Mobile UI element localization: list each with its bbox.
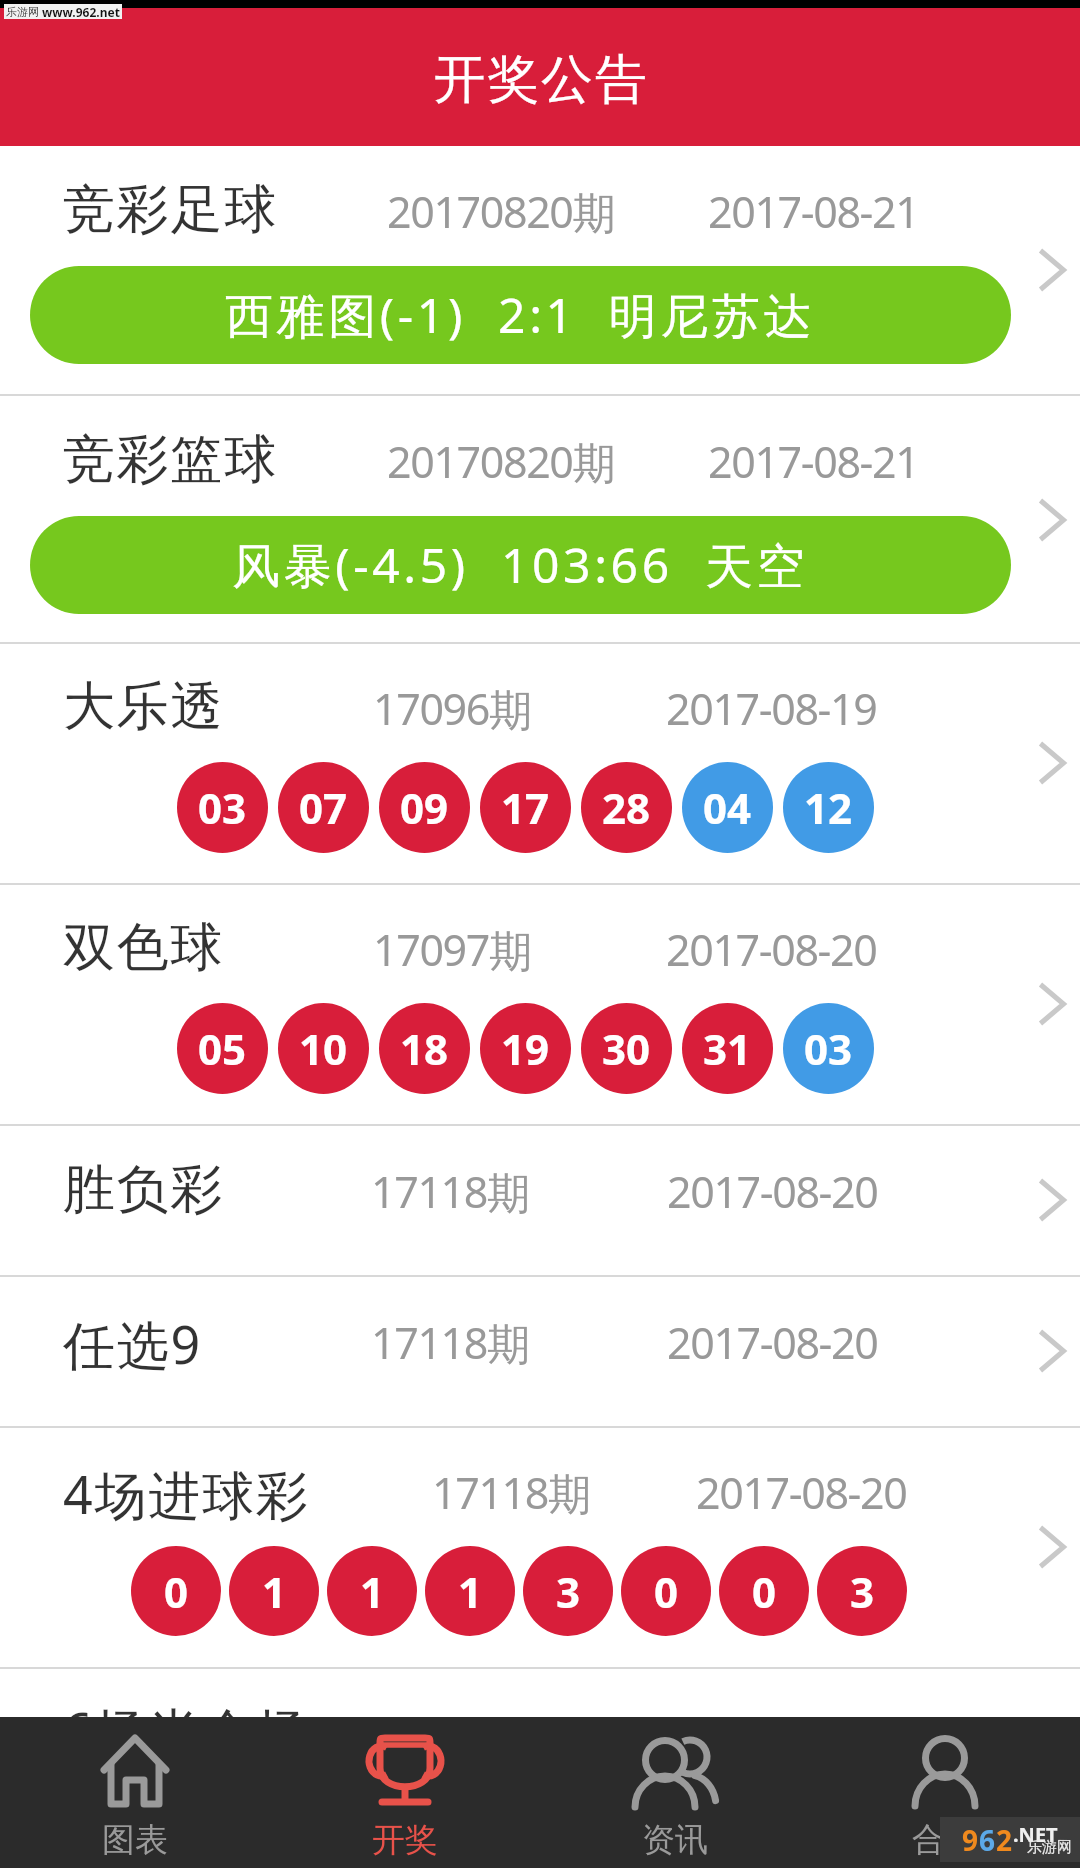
staticText: 资讯 <box>642 1819 708 1861</box>
staticText: 6场半全场 <box>63 1695 310 1766</box>
staticText: 乐游网 <box>1027 1838 1072 1857</box>
staticText: 2017-08-20 <box>696 1463 907 1522</box>
staticText: www.962.net <box>42 4 120 19</box>
staticText: 任选9 <box>63 1308 203 1379</box>
staticText: 风暴(-4.5) 103:66 天空 <box>232 532 809 598</box>
staticText: 31 <box>703 1020 752 1077</box>
button[interactable]: 图表 <box>0 1717 270 1868</box>
staticText: 2017-08-19 <box>666 679 877 738</box>
staticText: 09 <box>400 779 449 836</box>
staticText: 开奖公告 <box>433 47 649 113</box>
staticText: 17118期 <box>432 1463 590 1522</box>
staticText: 12 <box>804 779 853 836</box>
staticText: 20170820期 <box>387 182 615 241</box>
staticText: 19 <box>501 1020 550 1077</box>
staticText: 0 <box>654 1563 679 1620</box>
staticText: 2 <box>996 1821 1013 1859</box>
staticText: 2017-08-20 <box>667 1162 878 1221</box>
staticText: 4场进球彩 <box>63 1458 310 1529</box>
staticText: 9 <box>962 1821 979 1859</box>
staticText: 30 <box>602 1020 651 1077</box>
staticText: 17118期 <box>371 1313 529 1372</box>
staticText: 28 <box>602 779 651 836</box>
staticText: 2017-08-20 <box>667 1313 878 1372</box>
staticText: 17118期 <box>432 1722 590 1781</box>
staticText: 1 <box>360 1563 385 1620</box>
staticText: 17096期 <box>373 679 531 738</box>
staticText: 3 <box>556 1563 581 1620</box>
button[interactable]: 双色球 <box>0 885 1080 1124</box>
staticText: 2017-08-20 <box>696 1722 907 1781</box>
staticText: 17 <box>501 779 550 836</box>
staticText: 合买 <box>912 1819 978 1861</box>
staticText: 18 <box>400 1020 449 1077</box>
staticText: 17118期 <box>371 1162 529 1221</box>
staticText: 竞彩足球 <box>63 177 279 243</box>
staticText: 2017-08-21 <box>708 182 919 241</box>
staticText: 05 <box>198 1020 247 1077</box>
staticText: .NET <box>1013 1821 1058 1848</box>
staticText: 竞彩篮球 <box>63 427 279 493</box>
staticText: 6 <box>979 1821 996 1859</box>
staticText: 0 <box>164 1563 189 1620</box>
button[interactable]: 任选9 <box>0 1277 1080 1426</box>
staticText: 双色球 <box>63 915 225 981</box>
staticText: 03 <box>804 1020 853 1077</box>
button[interactable]: 6场半全场 <box>0 1669 1080 1818</box>
staticText: 图表 <box>102 1819 168 1861</box>
staticText: 西雅图(-1) 2:1 明尼苏达 <box>225 282 816 348</box>
button[interactable]: 竞彩足球 <box>0 146 1080 394</box>
staticText: 1 <box>262 1563 287 1620</box>
staticText: 04 <box>703 779 752 836</box>
staticText: 0 <box>752 1563 777 1620</box>
staticText: 17097期 <box>373 920 531 979</box>
staticText: 大乐透 <box>63 674 225 740</box>
staticText: 3 <box>850 1563 875 1620</box>
staticText: 07 <box>299 779 348 836</box>
button[interactable]: 4场进球彩 <box>0 1428 1080 1667</box>
button[interactable]: 竞彩篮球 <box>0 396 1080 642</box>
staticText: 胜负彩 <box>63 1157 225 1223</box>
staticText: 2017-08-20 <box>666 920 877 979</box>
button[interactable]: 大乐透 <box>0 644 1080 883</box>
button[interactable]: 胜负彩 <box>0 1126 1080 1275</box>
button[interactable]: 合买 <box>810 1717 1080 1868</box>
button[interactable]: 开奖 <box>270 1717 540 1868</box>
staticText: 10 <box>299 1020 348 1077</box>
button[interactable]: 资讯 <box>540 1717 810 1868</box>
staticText: 03 <box>198 779 247 836</box>
staticText: 开奖 <box>372 1819 438 1861</box>
staticText: 1 <box>458 1563 483 1620</box>
staticText: 乐游网 <box>6 5 39 19</box>
staticText: 2017-08-21 <box>708 432 919 491</box>
staticText: 20170820期 <box>387 432 615 491</box>
